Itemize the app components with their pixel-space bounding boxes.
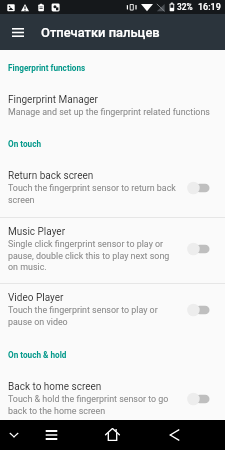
staticText: Touch the fingerprint sensor to return b… bbox=[8, 183, 178, 205]
button[interactable]: Back bbox=[161, 420, 188, 450]
button[interactable]: Fingerprint Manager bbox=[0, 86, 225, 122]
button[interactable]: Toggle bbox=[187, 241, 210, 257]
staticText: Fingerprint Manager bbox=[8, 94, 98, 106]
staticText: Music Player bbox=[8, 226, 66, 238]
staticText: Return back screen bbox=[8, 170, 94, 182]
staticText: Touch & hold the fingerprint sensor to g… bbox=[8, 394, 178, 416]
staticText: On touch & hold bbox=[8, 350, 67, 360]
staticText: Отпечатки пальцев bbox=[41, 25, 160, 40]
button[interactable]: Toggle bbox=[187, 180, 210, 196]
button[interactable]: Music Player bbox=[0, 218, 225, 283]
button[interactable]: Back to home screen bbox=[0, 373, 225, 418]
staticText: Back to home screen bbox=[8, 381, 102, 393]
staticText: Single click fingerprint sensor to play … bbox=[8, 239, 178, 272]
button[interactable]: Open navigation menu bbox=[0, 14, 35, 50]
staticText: 32% bbox=[177, 2, 193, 12]
button[interactable]: Hide keyboard bbox=[1, 420, 27, 450]
button[interactable]: Home bbox=[99, 420, 126, 450]
button[interactable]: Recent apps bbox=[38, 420, 65, 450]
staticText: 16:19 bbox=[198, 2, 221, 13]
button[interactable]: Return back screen bbox=[0, 162, 225, 217]
button[interactable]: Toggle bbox=[187, 391, 210, 407]
staticText: On touch bbox=[8, 139, 41, 149]
staticText: Touch the fingerprint sensor to play or … bbox=[8, 305, 178, 327]
button[interactable]: Video Player bbox=[0, 284, 225, 331]
staticText: Manage and set up the fingerprint relate… bbox=[8, 107, 210, 117]
staticText: Video Player bbox=[8, 292, 64, 304]
staticText: Fingerprint functions bbox=[8, 63, 86, 73]
button[interactable]: Toggle bbox=[187, 302, 210, 318]
